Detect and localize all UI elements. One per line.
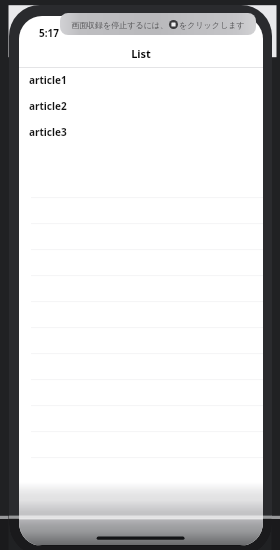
staticText: article3 — [29, 125, 67, 139]
staticText: article1 — [29, 73, 67, 87]
staticText: article2 — [29, 99, 67, 113]
staticText: 5:17 — [39, 26, 59, 40]
staticText: 画面収録を停止するには、 — [71, 20, 168, 30]
button[interactable]: article3 — [19, 119, 263, 145]
button[interactable]: article1 — [19, 67, 263, 93]
staticText: をクリックします — [179, 20, 245, 30]
button[interactable]: article2 — [19, 93, 263, 119]
staticText: List — [131, 46, 151, 61]
button[interactable]: Stop screen recording — [60, 13, 256, 35]
